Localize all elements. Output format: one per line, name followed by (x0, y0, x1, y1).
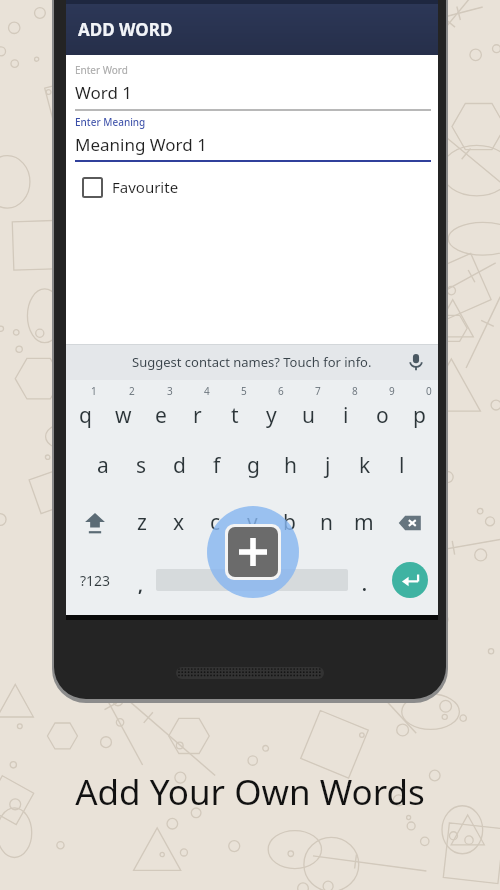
button[interactable]: j (309, 437, 346, 494)
staticText: o (376, 401, 389, 430)
staticText: Suggest contact names? Touch for info. (132, 353, 372, 371)
staticText: n (320, 508, 333, 537)
staticText: Enter Meaning (75, 115, 146, 129)
staticText: c (210, 508, 221, 537)
staticText: . (362, 573, 367, 596)
staticText: x (173, 508, 185, 537)
staticText: z (137, 508, 147, 537)
staticText: k (359, 451, 371, 480)
button[interactable]: Favourite (75, 175, 179, 199)
button[interactable]: ADD WORD (66, 4, 438, 55)
staticText: p (413, 401, 426, 430)
staticText: t (231, 401, 239, 430)
button[interactable]: 7 (290, 380, 327, 437)
button[interactable]: z (123, 494, 160, 551)
staticText: Enter Word (75, 63, 128, 77)
button[interactable]: k (346, 437, 383, 494)
staticText: r (193, 401, 202, 430)
staticText: Meaning Word 1 (75, 133, 207, 156)
button[interactable]: a (84, 437, 122, 494)
staticText: y (266, 401, 277, 430)
button[interactable]: Add word (228, 527, 278, 577)
staticText: 9 (389, 384, 395, 398)
button[interactable]: l (383, 437, 420, 494)
button[interactable]: , (124, 551, 156, 609)
staticText: b (283, 508, 296, 537)
button[interactable]: h (272, 437, 309, 494)
button[interactable]: Suggest contact names? Touch for info. (66, 344, 438, 380)
button[interactable]: . (348, 551, 381, 609)
button[interactable]: x (160, 494, 197, 551)
staticText: 4 (204, 384, 210, 398)
staticText: f (213, 451, 221, 480)
staticText: , (138, 574, 143, 597)
staticText: 8 (352, 384, 358, 398)
staticText: 7 (315, 384, 321, 398)
staticText: Favourite (112, 177, 179, 197)
button[interactable]: 8 (327, 380, 364, 437)
staticText: i (343, 401, 349, 430)
staticText: e (155, 401, 167, 430)
staticText: 5 (241, 384, 247, 398)
button[interactable]: Enter (381, 551, 438, 609)
button[interactable]: 6 (253, 380, 290, 437)
button[interactable]: Shift (66, 494, 123, 551)
staticText: 0 (426, 384, 432, 398)
staticText: 6 (278, 384, 284, 398)
button[interactable]: 1 (66, 380, 104, 437)
button[interactable]: 5 (216, 380, 253, 437)
staticText: a (97, 451, 109, 480)
staticText: 1 (91, 384, 97, 398)
staticText: m (354, 508, 374, 537)
button[interactable]: 4 (179, 380, 216, 437)
button[interactable]: Space (156, 551, 348, 609)
button[interactable]: Voice input (403, 349, 429, 375)
button[interactable]: 3 (142, 380, 179, 437)
button[interactable]: s (122, 437, 160, 494)
button[interactable]: m (345, 494, 382, 551)
staticText: ADD WORD (78, 18, 173, 41)
button[interactable]: Enter Meaning (75, 115, 431, 162)
staticText: Word 1 (75, 81, 133, 104)
button[interactable]: Backspace (382, 494, 438, 551)
staticText: v (247, 508, 258, 537)
staticText: j (325, 451, 331, 480)
staticText: d (173, 451, 186, 480)
button[interactable]: d (160, 437, 198, 494)
button[interactable]: 0 (401, 380, 438, 437)
button[interactable]: Enter Word (75, 63, 431, 111)
button[interactable]: b (271, 494, 308, 551)
button[interactable]: ?123 (66, 551, 124, 609)
button[interactable]: v (234, 494, 271, 551)
staticText: l (399, 451, 405, 480)
staticText: 3 (167, 384, 173, 398)
staticText: s (136, 451, 147, 480)
button[interactable]: n (308, 494, 345, 551)
button[interactable]: c (197, 494, 234, 551)
staticText: ?123 (80, 571, 111, 590)
staticText: h (284, 451, 297, 480)
button[interactable]: 2 (104, 380, 142, 437)
staticText: u (302, 401, 315, 430)
button[interactable]: 9 (364, 380, 401, 437)
staticText: Add Your Own Words (75, 768, 425, 816)
button[interactable]: f (198, 437, 235, 494)
staticText: w (115, 401, 132, 430)
staticText: g (247, 451, 260, 480)
staticText: 2 (129, 384, 135, 398)
staticText: q (79, 401, 92, 430)
button[interactable]: g (235, 437, 272, 494)
